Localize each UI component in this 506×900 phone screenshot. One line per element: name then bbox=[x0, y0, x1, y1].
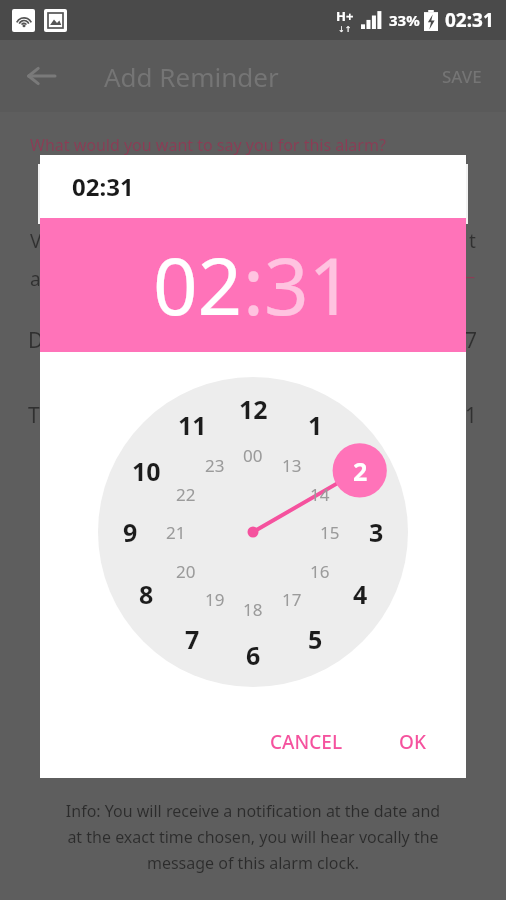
staticText: 02:31 bbox=[445, 7, 494, 33]
staticText: 17 bbox=[453, 326, 478, 355]
staticText: OK bbox=[399, 729, 426, 755]
button[interactable]: 31 bbox=[264, 232, 354, 338]
staticText: 20 bbox=[176, 560, 196, 583]
staticText: 22 bbox=[176, 483, 196, 506]
staticText: H+ bbox=[336, 7, 354, 25]
staticText: 9 bbox=[123, 515, 138, 549]
button[interactable]: Clock face, hour 2 selected bbox=[98, 377, 408, 687]
staticText: t bbox=[469, 228, 476, 254]
staticText: a bbox=[30, 266, 41, 292]
staticText: 00 bbox=[243, 444, 263, 467]
button[interactable]: OK bbox=[385, 719, 440, 765]
button[interactable]: 02 bbox=[153, 232, 243, 338]
staticText: V bbox=[30, 228, 42, 254]
staticText: 4 bbox=[353, 577, 368, 611]
staticText: 13 bbox=[282, 454, 302, 477]
staticText: 18 bbox=[243, 598, 263, 621]
staticText: — bbox=[460, 266, 476, 286]
staticText: 19 bbox=[205, 588, 225, 611]
staticText: 21 bbox=[166, 521, 186, 544]
staticText: 33% bbox=[389, 10, 420, 30]
staticText: 12 bbox=[239, 392, 268, 426]
staticText: : bbox=[243, 232, 264, 338]
staticText: 8 bbox=[139, 577, 154, 611]
staticText: D bbox=[28, 326, 44, 355]
staticText: Add Reminder bbox=[104, 59, 279, 94]
staticText: 1 bbox=[308, 408, 323, 442]
staticText: ↓↑ bbox=[338, 25, 352, 34]
staticText: 11 bbox=[178, 408, 207, 442]
staticText: SAVE bbox=[442, 65, 482, 88]
staticText: 15 bbox=[320, 521, 340, 544]
staticText: 02:31 bbox=[72, 170, 134, 203]
staticText: Ti bbox=[28, 401, 46, 430]
button[interactable]: Back bbox=[18, 53, 64, 99]
staticText: 14 bbox=[310, 483, 330, 506]
staticText: Info: You will receive a notification at… bbox=[20, 800, 486, 874]
staticText: 02 bbox=[153, 232, 243, 338]
button[interactable]: SAVE bbox=[432, 57, 492, 96]
staticText: What would you want to say you for this … bbox=[30, 134, 386, 156]
staticText: 31 bbox=[453, 401, 478, 430]
staticText: 31 bbox=[264, 232, 354, 338]
staticText: 23 bbox=[205, 454, 225, 477]
staticText: 10 bbox=[132, 454, 161, 488]
staticText: 17 bbox=[282, 588, 302, 611]
staticText: 7 bbox=[185, 622, 200, 656]
staticText: 3 bbox=[369, 515, 384, 549]
staticText: 16 bbox=[310, 560, 330, 583]
staticText: 2 bbox=[353, 454, 368, 488]
button[interactable]: CANCEL bbox=[256, 719, 357, 765]
staticText: 5 bbox=[308, 622, 323, 656]
staticText: CANCEL bbox=[270, 729, 343, 755]
staticText: 6 bbox=[246, 638, 261, 672]
